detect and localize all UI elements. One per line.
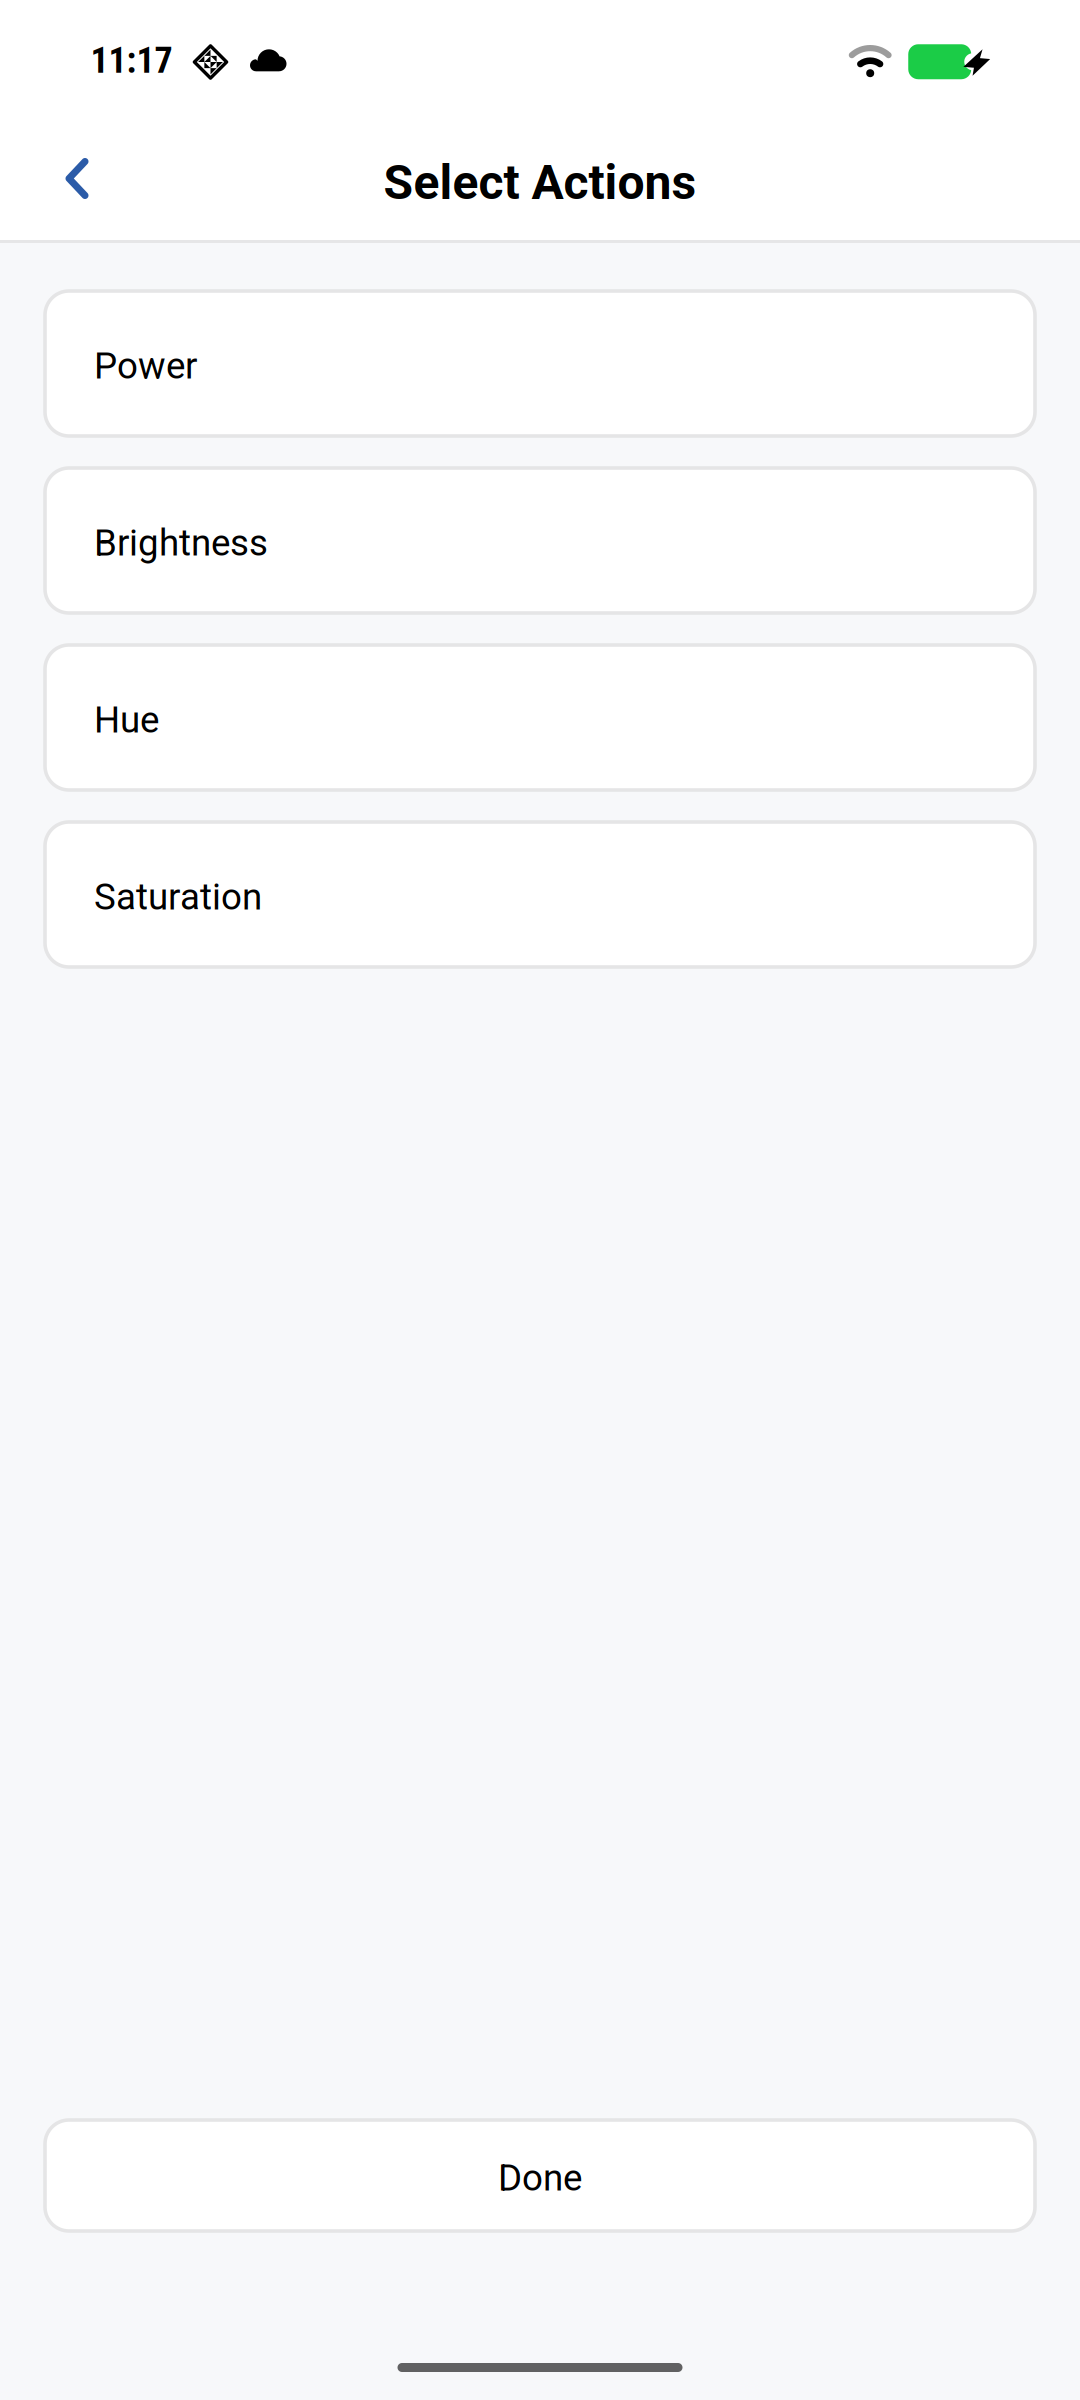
staticText: 11:17 (90, 39, 172, 82)
button[interactable]: Done (45, 2120, 1035, 2231)
staticText: Done (498, 2156, 582, 2199)
button[interactable]: Brightness (45, 468, 1035, 613)
staticText: Brightness (94, 521, 268, 564)
button[interactable]: Power (45, 291, 1035, 436)
staticText: Power (94, 344, 197, 387)
staticText: Saturation (94, 875, 262, 918)
button[interactable]: Back (33, 133, 121, 231)
staticText: Hue (94, 698, 159, 741)
button[interactable]: Saturation (45, 822, 1035, 967)
button[interactable]: Hue (45, 645, 1035, 790)
staticText: Select Actions (383, 154, 696, 211)
